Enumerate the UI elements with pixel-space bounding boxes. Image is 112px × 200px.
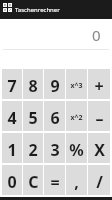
staticText: 7: [7, 75, 17, 97]
staticText: 0: [7, 171, 17, 193]
staticText: 6: [50, 107, 60, 129]
button[interactable]: 9: [44, 69, 65, 99]
button[interactable]: 6: [44, 101, 65, 131]
button[interactable]: x^2: [66, 101, 87, 131]
staticText: 9: [50, 75, 60, 97]
button[interactable]: –: [88, 101, 110, 131]
button[interactable]: 3: [44, 133, 65, 163]
button[interactable]: C: [23, 165, 43, 195]
staticText: 4: [7, 107, 17, 129]
staticText: 1: [7, 139, 17, 161]
button[interactable]: 5: [23, 101, 43, 131]
staticText: 0: [92, 25, 101, 45]
other: Calculator app icon: [3, 3, 12, 12]
button[interactable]: 7: [2, 69, 22, 99]
staticText: x^3: [70, 81, 83, 91]
staticText: C: [28, 171, 39, 193]
button[interactable]: ,: [66, 165, 87, 195]
staticText: 3: [50, 139, 60, 161]
button[interactable]: x^3: [66, 69, 87, 99]
staticText: x^2: [70, 113, 83, 123]
button[interactable]: =: [44, 165, 65, 195]
button[interactable]: X: [88, 133, 110, 163]
staticText: Taschenrechner: [15, 6, 60, 14]
button[interactable]: +: [88, 69, 110, 99]
staticText: =: [50, 171, 60, 193]
staticText: X: [94, 139, 105, 161]
button[interactable]: %: [66, 133, 87, 163]
staticText: 2: [28, 139, 38, 161]
button[interactable]: 4: [2, 101, 22, 131]
staticText: /: [96, 171, 103, 193]
button[interactable]: /: [88, 165, 110, 195]
button[interactable]: 8: [23, 69, 43, 99]
button[interactable]: 1: [2, 133, 22, 163]
staticText: %: [69, 139, 84, 161]
staticText: ,: [74, 171, 79, 193]
staticText: –: [95, 107, 104, 129]
button[interactable]: 0: [2, 165, 22, 195]
button[interactable]: Calculator app icon: [0, 0, 112, 19]
staticText: 5: [28, 107, 38, 129]
button[interactable]: 2: [23, 133, 43, 163]
staticText: 8: [28, 75, 38, 97]
staticText: +: [94, 75, 104, 97]
